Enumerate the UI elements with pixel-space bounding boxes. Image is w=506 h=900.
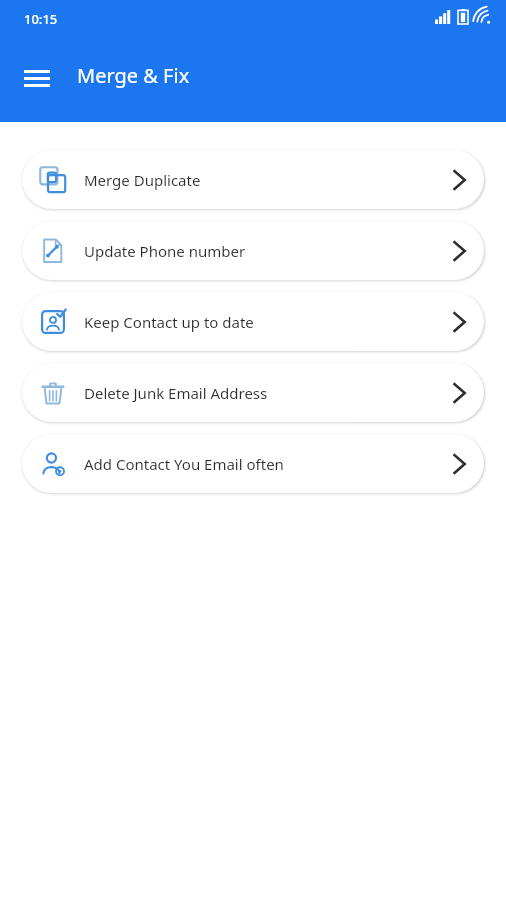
button[interactable]: Keep Contact up to date — [22, 292, 484, 351]
staticText: Add Contact You Email often — [84, 454, 284, 474]
staticText: Merge Duplicate — [84, 170, 201, 190]
button[interactable]: Add Contact You Email often — [22, 434, 484, 493]
button[interactable]: Update Phone number — [22, 221, 484, 280]
button[interactable]: Delete Junk Email Address — [22, 363, 484, 422]
button[interactable]: Open navigation menu — [12, 56, 62, 100]
staticText: Keep Contact up to date — [84, 312, 254, 332]
staticText: Update Phone number — [84, 241, 246, 261]
staticText: Merge & Fix — [77, 62, 190, 89]
staticText: 10:15 — [24, 10, 58, 28]
staticText: Delete Junk Email Address — [84, 383, 268, 403]
button[interactable]: Merge Duplicate — [22, 150, 484, 209]
